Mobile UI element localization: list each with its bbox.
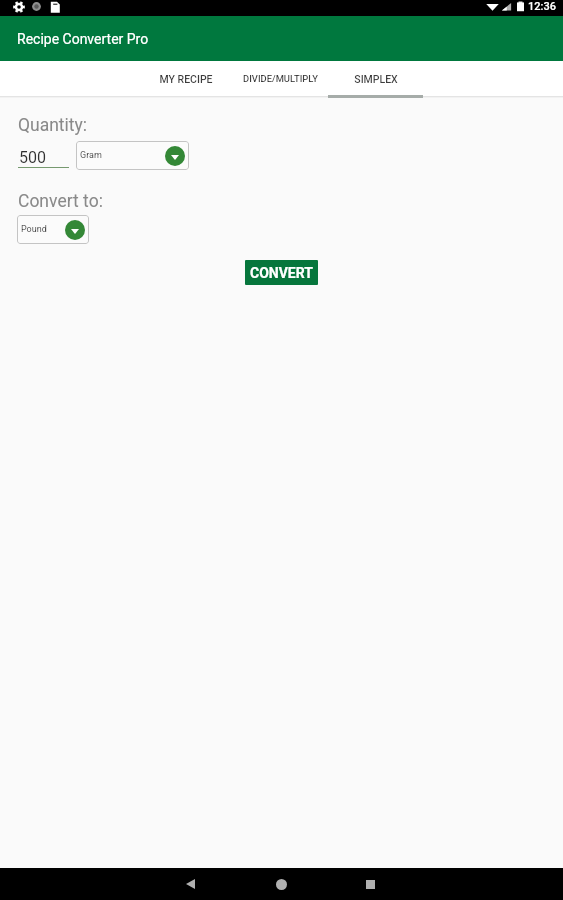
staticText: MY RECIPE [159,73,213,85]
button[interactable]: DIVIDE/MULTIPLY [233,61,328,98]
staticText: Pound [21,224,47,235]
staticText: CONVERT [250,265,313,281]
button[interactable]: Gram [76,141,189,170]
staticText: SIMPLEX [354,73,398,85]
button[interactable]: SIMPLEX [328,61,423,98]
staticText: Recipe Converter Pro [17,31,149,47]
button[interactable]: Back [169,868,212,900]
staticText: 12:36 [528,0,556,13]
staticText: 500 [19,148,46,167]
staticText: DIVIDE/MULTIPLY [243,73,318,84]
staticText: Quantity: [18,115,88,136]
button[interactable]: Pound [17,215,89,244]
staticText: Convert to: [18,191,103,212]
button[interactable]: CONVERT [245,260,318,285]
button[interactable]: Recents [349,868,392,900]
button[interactable]: Home [260,868,303,900]
staticText: Gram [80,150,102,161]
button[interactable]: MY RECIPE [138,61,233,98]
